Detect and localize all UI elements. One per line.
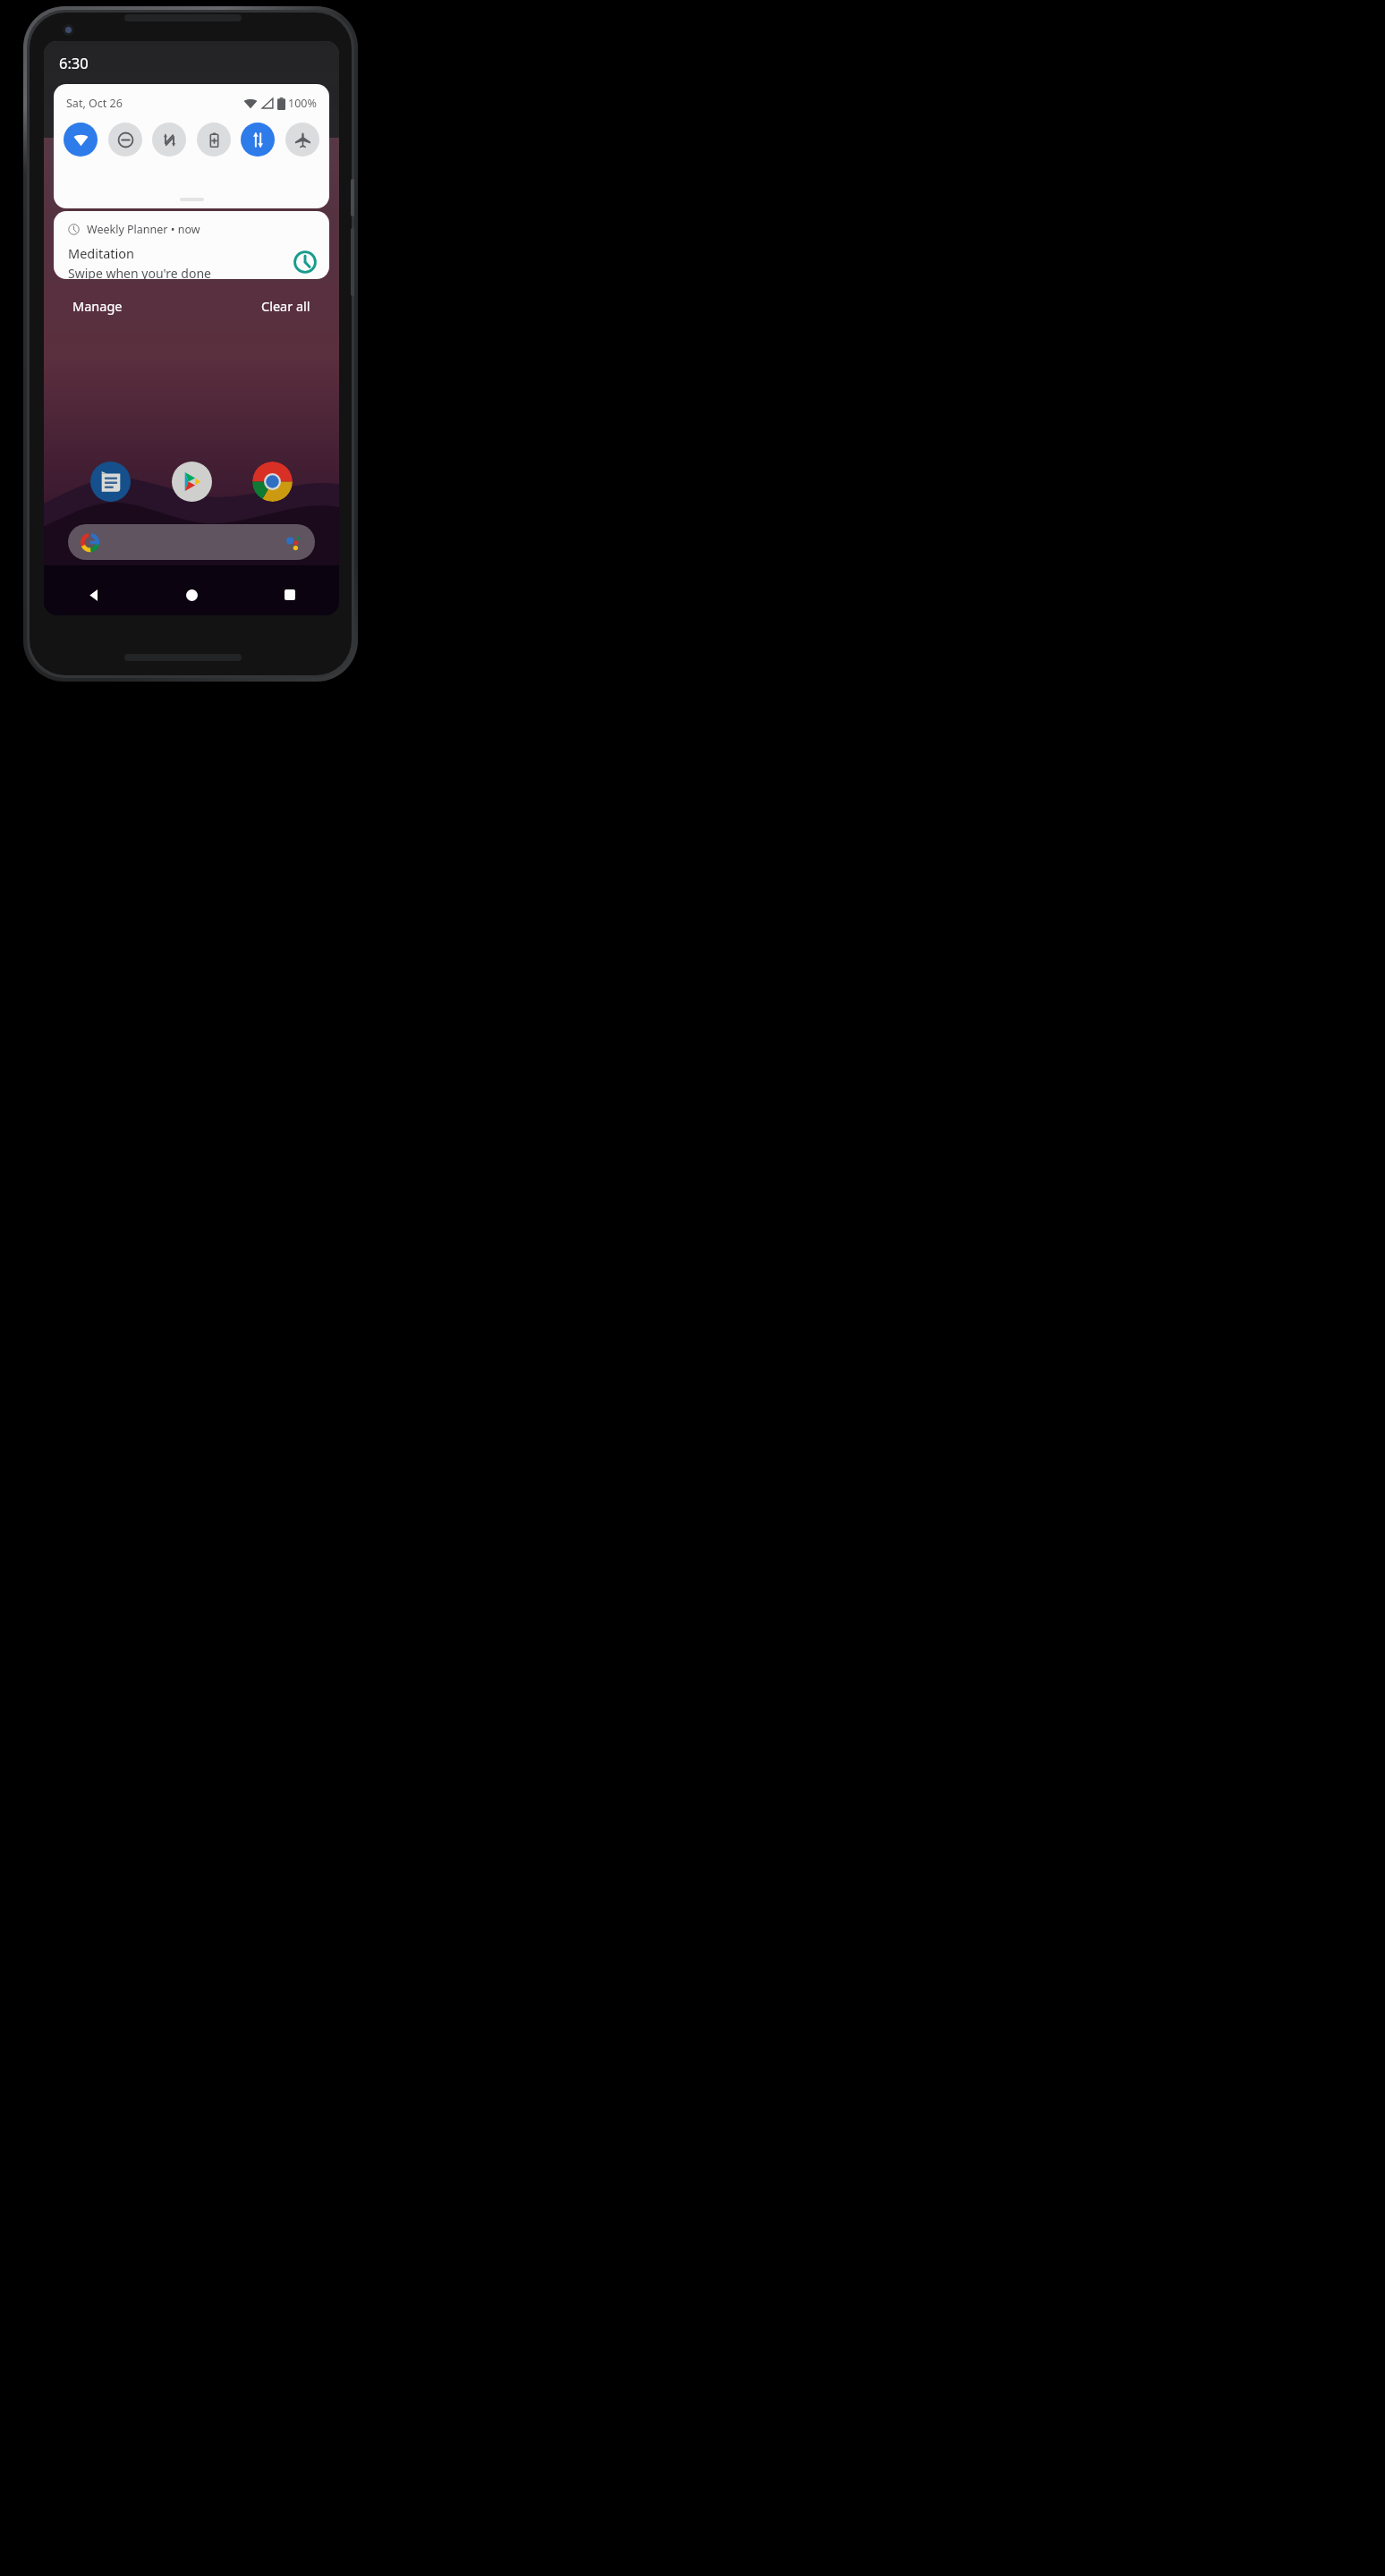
button[interactable]: Clear all xyxy=(258,292,314,320)
button[interactable]: Messages xyxy=(90,462,131,502)
button[interactable]: Auto rotate xyxy=(152,123,186,157)
staticText: Weekly Planner • now xyxy=(87,222,200,237)
button[interactable]: Mobile data xyxy=(241,123,275,157)
button[interactable]: Chrome xyxy=(252,462,293,502)
button[interactable]: Do Not Disturb xyxy=(108,123,142,157)
button[interactable]: Battery Saver xyxy=(197,123,231,157)
staticText: Clear all xyxy=(261,297,310,315)
button[interactable]: Manage xyxy=(69,292,126,320)
button[interactable]: Wi-Fi xyxy=(64,123,98,157)
button[interactable]: Back xyxy=(44,574,142,615)
button[interactable]: Play Store xyxy=(172,462,212,502)
staticText: Sat, Oct 26 xyxy=(66,96,123,111)
staticText: Manage xyxy=(72,297,123,315)
staticText: 100% xyxy=(288,96,317,111)
button[interactable]: Google search xyxy=(68,524,315,560)
button[interactable]: Home xyxy=(142,574,241,615)
staticText: 6:30 xyxy=(59,53,89,72)
button[interactable]: Recent apps xyxy=(241,574,339,615)
staticText: Swipe when you're done xyxy=(68,265,211,279)
button[interactable]: Weekly Planner • now xyxy=(54,211,329,279)
button[interactable]: Airplane mode xyxy=(285,123,319,157)
staticText: Meditation xyxy=(68,244,135,262)
